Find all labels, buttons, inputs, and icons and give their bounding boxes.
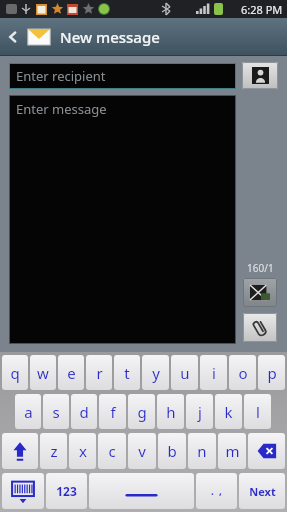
staticText: c [108, 441, 116, 461]
button[interactable]: m [218, 433, 246, 469]
staticText: b [167, 441, 177, 461]
staticText: Enter message [16, 100, 107, 118]
staticText: 6:28 PM [241, 2, 283, 17]
staticText: z [50, 441, 58, 461]
button[interactable]: q [2, 355, 28, 390]
button[interactable]: l [244, 394, 271, 429]
staticText: New message [60, 27, 160, 47]
button[interactable]: . , [196, 473, 237, 509]
button[interactable]: Enter message [9, 95, 236, 344]
button[interactable]: z [40, 433, 67, 469]
staticText: m [225, 441, 240, 461]
staticText: Enter recipient [16, 67, 106, 85]
button[interactable]: n [188, 433, 216, 469]
staticText: r [96, 363, 103, 383]
button[interactable]: Back [0, 18, 26, 55]
button[interactable]: 123 [46, 473, 87, 509]
button[interactable]: p [258, 355, 285, 390]
button[interactable]: h [157, 394, 184, 429]
staticText: j [198, 402, 202, 422]
button[interactable]: Enter recipient [9, 63, 236, 89]
button[interactable]: a [15, 394, 41, 429]
staticText: q [10, 363, 20, 383]
button[interactable]: g [128, 394, 155, 429]
staticText: Next [249, 484, 276, 499]
staticText: 123 [56, 483, 77, 499]
button[interactable]: v [128, 433, 156, 469]
staticText: v [138, 441, 146, 461]
staticText: a [24, 402, 33, 422]
staticText: n [197, 441, 207, 461]
staticText: . , [211, 484, 222, 498]
staticText: s [52, 402, 60, 422]
button[interactable]: o [229, 355, 256, 390]
staticText: k [224, 402, 233, 422]
button[interactable]: f [99, 394, 126, 429]
button[interactable]: x [69, 433, 96, 469]
button[interactable]: b [158, 433, 186, 469]
button[interactable]: Next [239, 473, 285, 509]
button[interactable]: Shift [2, 433, 38, 469]
button[interactable]: k [215, 394, 242, 429]
button[interactable]: Space [89, 473, 194, 509]
staticText: i [212, 363, 216, 383]
staticText: d [79, 402, 89, 422]
button[interactable]: d [71, 394, 97, 429]
button[interactable]: e [58, 355, 84, 390]
button[interactable]: Keyboard settings [2, 473, 44, 509]
staticText: h [166, 402, 176, 422]
button[interactable]: j [186, 394, 213, 429]
button[interactable]: t [114, 355, 140, 390]
button[interactable]: Send [243, 278, 277, 307]
staticText: o [238, 363, 248, 383]
staticText: l [256, 402, 260, 422]
button[interactable]: y [142, 355, 169, 390]
button[interactable]: Backspace [248, 433, 285, 469]
button[interactable]: w [30, 355, 56, 390]
staticText: t [124, 363, 130, 383]
staticText: f [110, 402, 116, 422]
staticText: e [67, 363, 76, 383]
button[interactable]: s [43, 394, 69, 429]
button[interactable]: i [200, 355, 227, 390]
staticText: w [37, 363, 49, 383]
staticText: u [180, 363, 190, 383]
button[interactable]: Attach [243, 313, 277, 342]
staticText: y [152, 363, 160, 383]
button[interactable]: r [86, 355, 112, 390]
staticText: p [267, 363, 277, 383]
button[interactable]: u [171, 355, 198, 390]
staticText: x [79, 441, 87, 461]
button[interactable]: c [98, 433, 126, 469]
staticText: g [137, 402, 147, 422]
button[interactable]: Choose contact [242, 62, 278, 89]
staticText: 160/1 [247, 261, 274, 275]
